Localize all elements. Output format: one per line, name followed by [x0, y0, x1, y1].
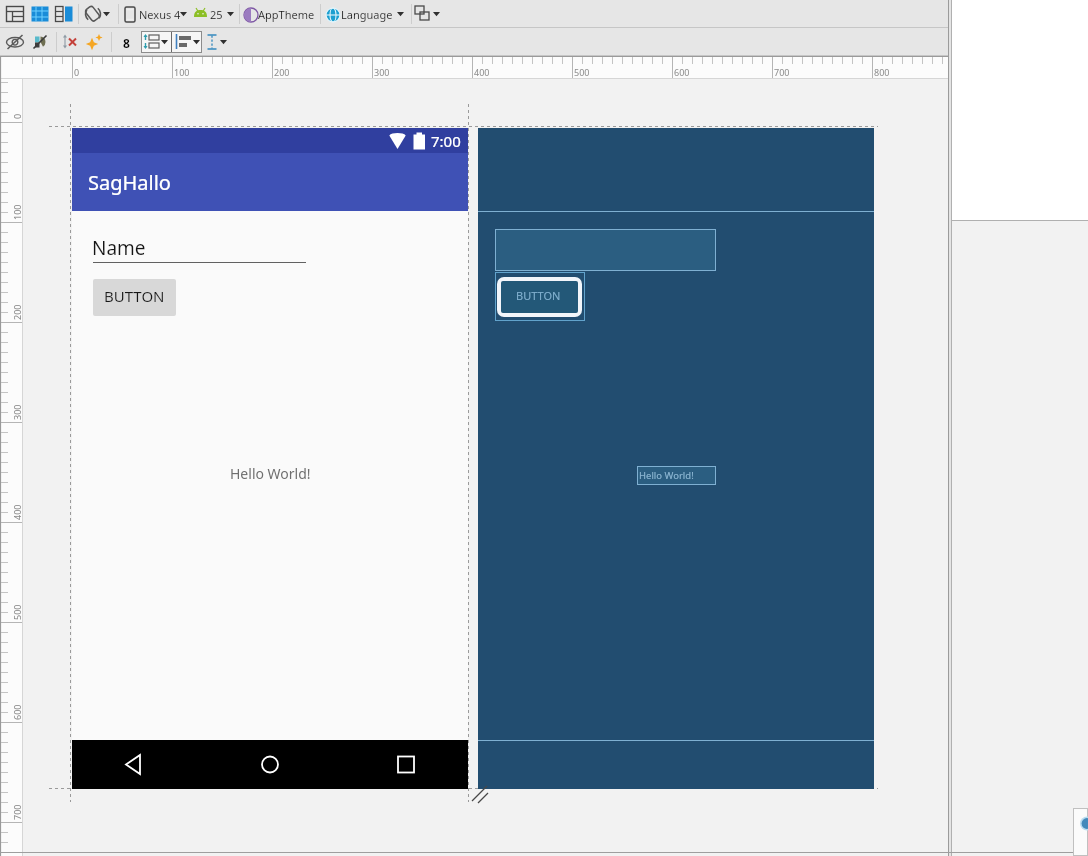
staticText: Language [341, 7, 393, 22]
staticText: 400 [474, 66, 490, 78]
button[interactable]: Pack [143, 33, 169, 51]
staticText: 400 [11, 504, 23, 520]
button[interactable]: BUTTON [497, 277, 582, 317]
staticText: 7:00 [431, 131, 461, 151]
staticText: 700 [11, 804, 23, 820]
staticText: BUTTON [516, 288, 561, 303]
staticText: 500 [574, 66, 590, 78]
button[interactable]: Align [175, 33, 201, 51]
button[interactable]: Back [101, 740, 167, 789]
staticText: 800 [874, 66, 890, 78]
button[interactable] [495, 229, 716, 271]
staticText: 8 [123, 35, 130, 51]
button[interactable]: Infer constraints [85, 33, 103, 51]
button[interactable]: Recents [373, 740, 439, 789]
button[interactable]: SagHallo [72, 153, 468, 211]
staticText: 25 [210, 7, 223, 22]
staticText: 100 [174, 66, 190, 78]
staticText: Hello World! [230, 464, 311, 483]
staticText: 500 [11, 604, 23, 620]
staticText: Name [92, 235, 146, 261]
button[interactable]: Layout variants [414, 5, 442, 22]
button[interactable]: Both views [55, 5, 72, 22]
staticText: 700 [774, 66, 790, 78]
button[interactable]: BUTTON [93, 279, 176, 316]
button[interactable]: Language [323, 3, 407, 25]
button[interactable]: Design view [6, 5, 23, 22]
staticText: 600 [674, 66, 690, 78]
button[interactable]: Clear constraints [61, 33, 79, 51]
staticText: 0 [11, 113, 23, 119]
staticText: SagHallo [88, 169, 171, 196]
staticText: Nexus 4 [139, 7, 181, 22]
staticText: 300 [11, 404, 23, 420]
staticText: AppTheme [258, 7, 315, 22]
button[interactable]: Autoconnect [31, 33, 49, 51]
button[interactable]: Show constraints [6, 33, 24, 51]
button[interactable]: Guidelines [206, 33, 228, 51]
button[interactable]: AppTheme [241, 3, 316, 25]
staticText: 200 [11, 304, 23, 320]
staticText: 600 [11, 704, 23, 720]
staticText: 0 [74, 66, 80, 78]
button[interactable]: Name [93, 224, 306, 263]
button[interactable]: 25 [190, 3, 236, 25]
staticText: Hello World! [639, 469, 694, 482]
button[interactable]: Nexus 4 [120, 3, 188, 25]
staticText: 100 [11, 204, 23, 220]
staticText: 200 [274, 66, 290, 78]
button[interactable]: Orientation [84, 5, 112, 22]
button[interactable]: Home [237, 740, 303, 789]
staticText: 300 [374, 66, 390, 78]
button[interactable]: Blueprint view [31, 5, 48, 22]
button[interactable]: Hello World! [637, 466, 716, 485]
staticText: BUTTON [104, 286, 165, 306]
